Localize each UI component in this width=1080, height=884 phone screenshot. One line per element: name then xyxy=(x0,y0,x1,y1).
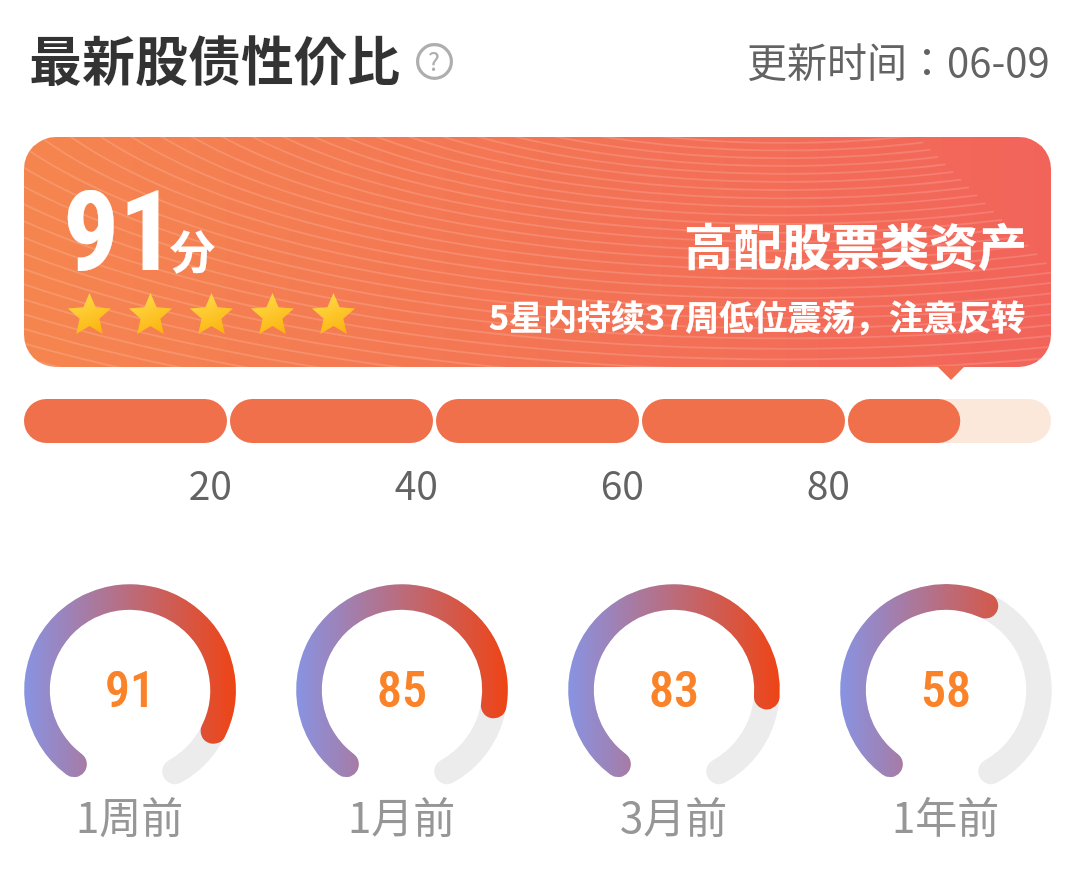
staticText: 58 xyxy=(921,661,972,720)
button[interactable]: 85 xyxy=(282,569,522,849)
staticText: 分 xyxy=(170,217,216,282)
other: Help xyxy=(414,41,454,81)
staticText: 最新股债性价比 xyxy=(29,20,400,97)
staticText: 80 xyxy=(730,455,850,511)
staticText: 40 xyxy=(318,455,438,511)
button[interactable]: 更新时间：06-09 xyxy=(747,31,1050,89)
button[interactable]: 91 xyxy=(10,569,250,849)
staticText: 5星内持续37周低位震荡，注意反转 xyxy=(489,291,1026,340)
staticText: 60 xyxy=(524,455,644,511)
button[interactable]: 83 xyxy=(554,569,794,849)
button[interactable]: 最新股债性价比 xyxy=(29,20,454,97)
staticText: 1年前 xyxy=(892,784,1000,845)
button[interactable]: Score scale xyxy=(24,399,1051,443)
staticText: 1月前 xyxy=(348,784,456,845)
staticText: 高配股票类资产 xyxy=(684,208,1028,279)
button[interactable]: 58 xyxy=(826,569,1066,849)
button[interactable]: 91 xyxy=(24,137,1051,367)
staticText: 91 xyxy=(63,167,176,297)
staticText: 更新时间：06-09 xyxy=(747,31,1050,89)
staticText: 3月前 xyxy=(620,784,728,845)
staticText: 91 xyxy=(105,661,156,720)
staticText: ? xyxy=(428,42,440,78)
staticText: 85 xyxy=(377,661,428,720)
staticText: 1周前 xyxy=(76,784,184,845)
staticText: 83 xyxy=(649,661,700,720)
staticText: 20 xyxy=(112,455,232,511)
